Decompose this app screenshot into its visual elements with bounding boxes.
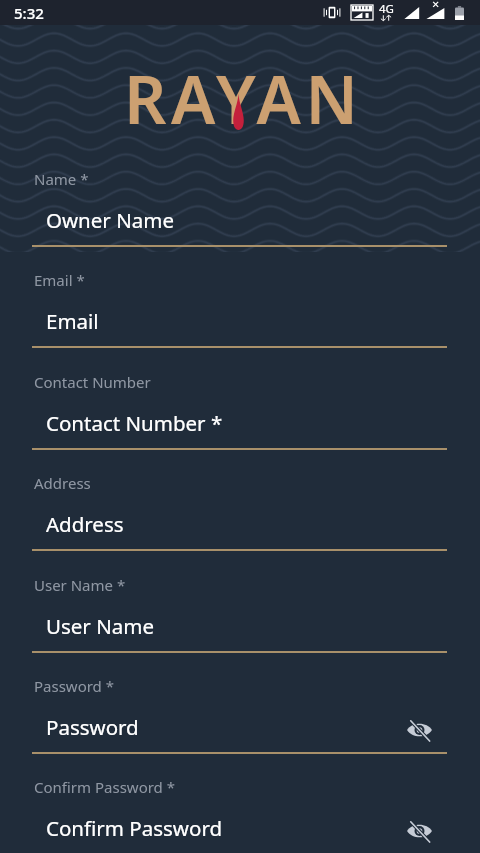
staticText: 4G xyxy=(379,1,394,17)
staticText: Owner Name xyxy=(46,206,174,234)
button[interactable]: Name * xyxy=(32,169,447,248)
staticText: User Name * xyxy=(34,575,126,595)
button[interactable]: Show password xyxy=(401,813,437,849)
button[interactable]: Contact Number xyxy=(32,372,447,451)
staticText: Confirm Password * xyxy=(34,777,175,797)
staticText: Password xyxy=(46,713,139,741)
staticText: Confirm Password xyxy=(46,814,223,842)
staticText: Address xyxy=(34,473,91,493)
button[interactable]: Confirm Password * xyxy=(32,777,447,853)
button[interactable]: Email * xyxy=(32,270,447,349)
button[interactable]: Show password xyxy=(401,712,437,748)
staticText: Contact Number xyxy=(34,372,151,392)
staticText: Name * xyxy=(34,169,89,189)
staticText: Address xyxy=(46,510,124,538)
staticText: Email * xyxy=(34,270,85,290)
button[interactable]: User Name * xyxy=(32,575,447,654)
staticText: User Name xyxy=(46,612,154,640)
staticText: Password * xyxy=(34,676,115,696)
staticText: Contact Number * xyxy=(46,409,223,437)
button[interactable]: Password * xyxy=(32,676,447,755)
staticText: RAYAN xyxy=(124,53,363,133)
staticText: Email xyxy=(46,307,99,335)
staticText: 5:32 xyxy=(14,3,44,23)
button[interactable]: Address xyxy=(32,473,447,552)
